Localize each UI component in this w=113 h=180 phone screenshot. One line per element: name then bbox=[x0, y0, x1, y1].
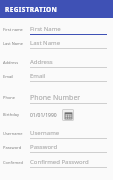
staticText: REGISTRATION bbox=[5, 5, 58, 14]
staticText: 01/01/1990 bbox=[30, 112, 57, 119]
staticText: Confirmed Password bbox=[3, 160, 28, 165]
button[interactable]: First name bbox=[0, 23, 113, 35]
button[interactable]: Confirmed Password bbox=[0, 156, 113, 168]
staticText: Password bbox=[3, 145, 22, 150]
button[interactable]: Last Name bbox=[0, 37, 113, 49]
staticText: Phone Number bbox=[30, 93, 81, 103]
staticText: Address bbox=[30, 58, 53, 66]
staticText: Phone Number bbox=[3, 95, 28, 100]
staticText: Username bbox=[30, 129, 60, 137]
button[interactable]: Pick date bbox=[62, 109, 74, 121]
staticText: Birthday bbox=[3, 112, 19, 117]
staticText: Password bbox=[30, 143, 58, 151]
button[interactable]: Address bbox=[0, 56, 113, 68]
button[interactable]: Email bbox=[0, 70, 113, 82]
staticText: Email bbox=[3, 74, 14, 79]
button[interactable]: Username bbox=[0, 127, 113, 139]
button[interactable]: Phone Number bbox=[0, 91, 113, 104]
button[interactable]: Birthday bbox=[0, 107, 113, 122]
staticText: Confirmed Password bbox=[30, 158, 89, 166]
staticText: Address bbox=[3, 60, 19, 65]
staticText: Last Name bbox=[30, 39, 61, 47]
button[interactable]: REGISTRATION bbox=[0, 0, 113, 18]
staticText: First Name bbox=[30, 25, 61, 33]
button[interactable]: Password bbox=[0, 141, 113, 153]
staticText: Email bbox=[30, 72, 46, 80]
staticText: Last Name bbox=[3, 41, 24, 46]
staticText: Username bbox=[3, 131, 23, 136]
staticText: First name bbox=[3, 27, 23, 32]
